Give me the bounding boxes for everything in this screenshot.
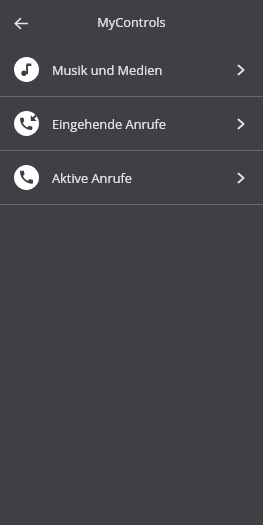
button[interactable]: Musik und Medien xyxy=(0,43,263,96)
staticText: Aktive Anrufe xyxy=(52,169,133,186)
staticText: Eingehende Anrufe xyxy=(52,115,167,132)
button[interactable]: Aktive Anrufe xyxy=(0,151,263,204)
button[interactable]: Eingehende Anrufe xyxy=(0,97,263,150)
staticText: Musik und Medien xyxy=(52,61,163,78)
button[interactable]: Back xyxy=(2,4,40,42)
staticText: MyControls xyxy=(97,13,166,30)
